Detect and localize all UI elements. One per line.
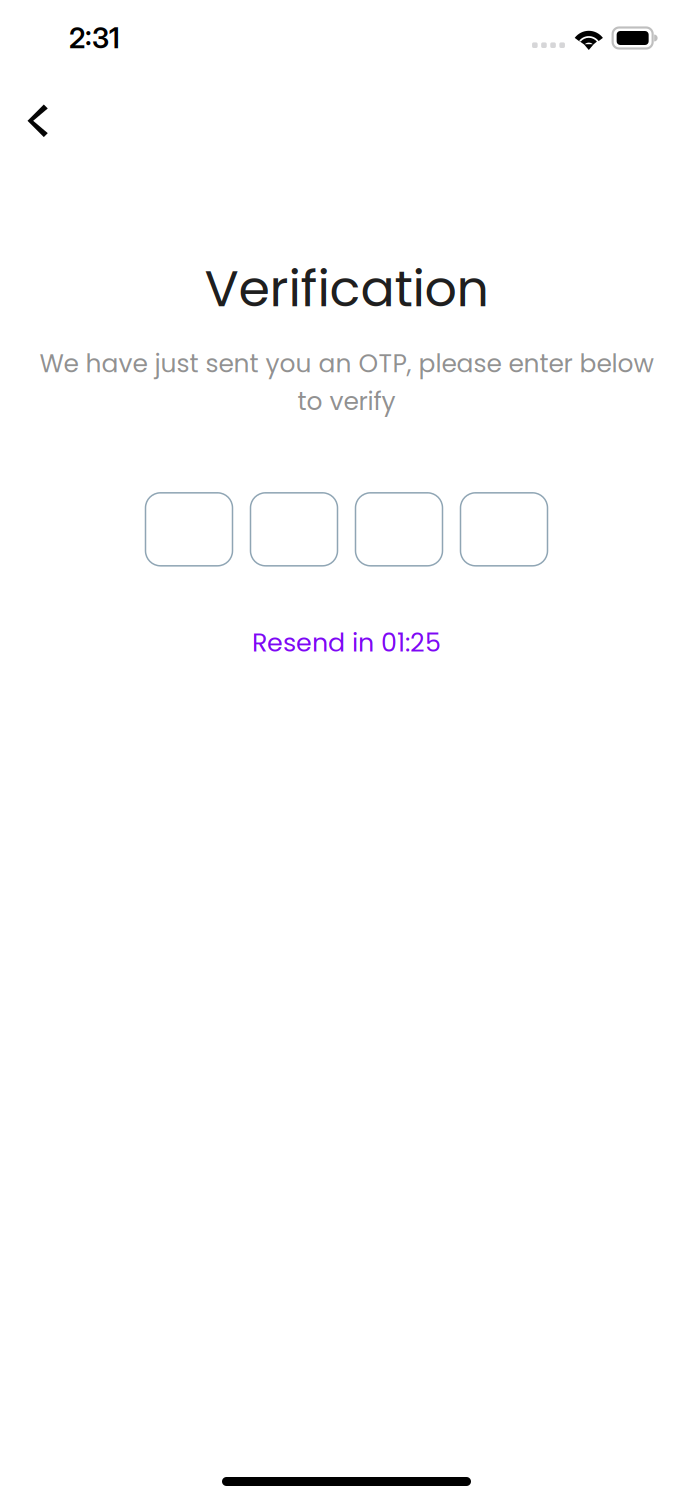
staticText: 2:31 (69, 21, 120, 55)
staticText: Verification (204, 253, 488, 324)
button[interactable]: Back (15, 76, 60, 166)
staticText: We have just sent you an OTP, please ent… (39, 346, 653, 381)
staticText: Resend in 01:25 (252, 625, 441, 660)
button[interactable]: Resend in 01:25 (252, 625, 441, 660)
button[interactable]: Verification code digit 2 (250, 493, 337, 566)
button[interactable]: Verification code digit 1 (145, 493, 232, 566)
staticText: to verify (297, 384, 395, 419)
button[interactable]: Verification code digit 4 (460, 493, 547, 566)
button[interactable]: Verification code digit 3 (355, 493, 442, 566)
